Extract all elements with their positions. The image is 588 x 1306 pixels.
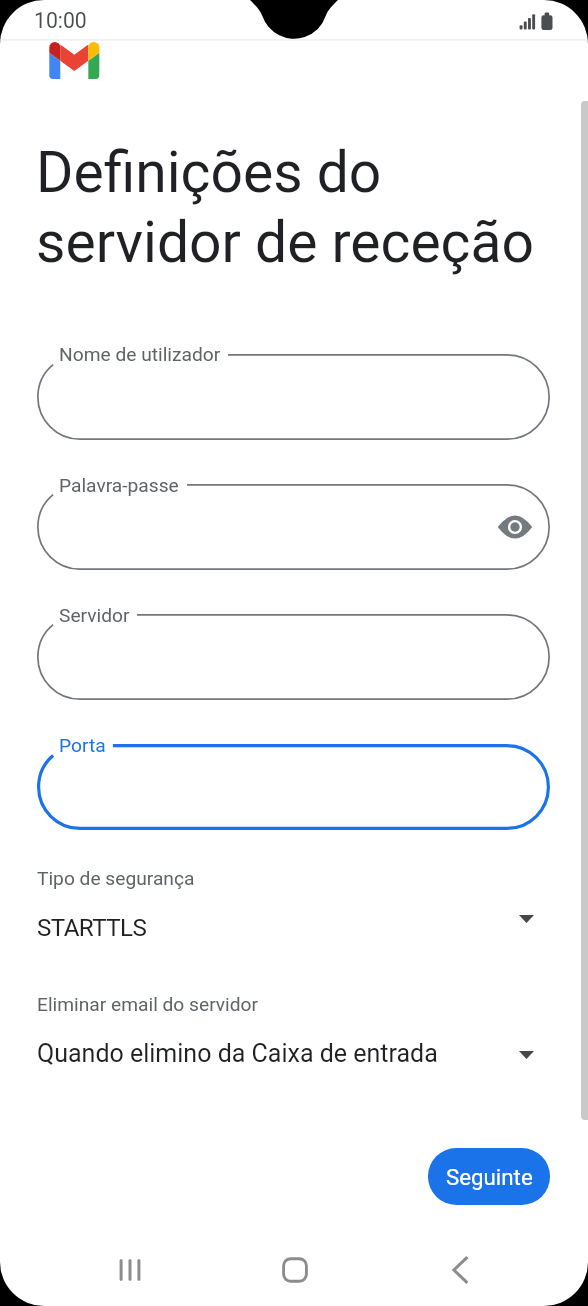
button[interactable] xyxy=(30,989,558,1076)
staticText: Servidor xyxy=(59,604,130,627)
button[interactable] xyxy=(37,744,550,830)
staticText: Quando elimino da Caixa de entrada xyxy=(37,1039,438,1068)
button[interactable]: Recentes xyxy=(99,1239,161,1301)
staticText: STARTTLS xyxy=(37,914,147,942)
button[interactable] xyxy=(37,484,550,570)
button[interactable] xyxy=(30,863,558,950)
button[interactable] xyxy=(37,614,550,700)
staticText: Eliminar email do servidor xyxy=(37,993,259,1016)
button[interactable]: Anterior xyxy=(429,1239,491,1301)
button[interactable] xyxy=(37,354,550,440)
staticText: Seguinte xyxy=(446,1164,533,1190)
button[interactable]: Mostrar palavra-passe xyxy=(489,501,541,553)
staticText: Palavra-passe xyxy=(59,474,179,497)
staticText: Definições do xyxy=(36,139,382,206)
button[interactable] xyxy=(428,1148,550,1205)
staticText: servidor de receção xyxy=(36,209,534,276)
staticText: Tipo de segurança xyxy=(37,867,195,890)
staticText: Nome de utilizador xyxy=(59,343,221,366)
button[interactable]: Ecrã principal xyxy=(264,1239,326,1301)
staticText: Porta xyxy=(59,734,106,757)
staticText: 10:00 xyxy=(34,8,87,33)
